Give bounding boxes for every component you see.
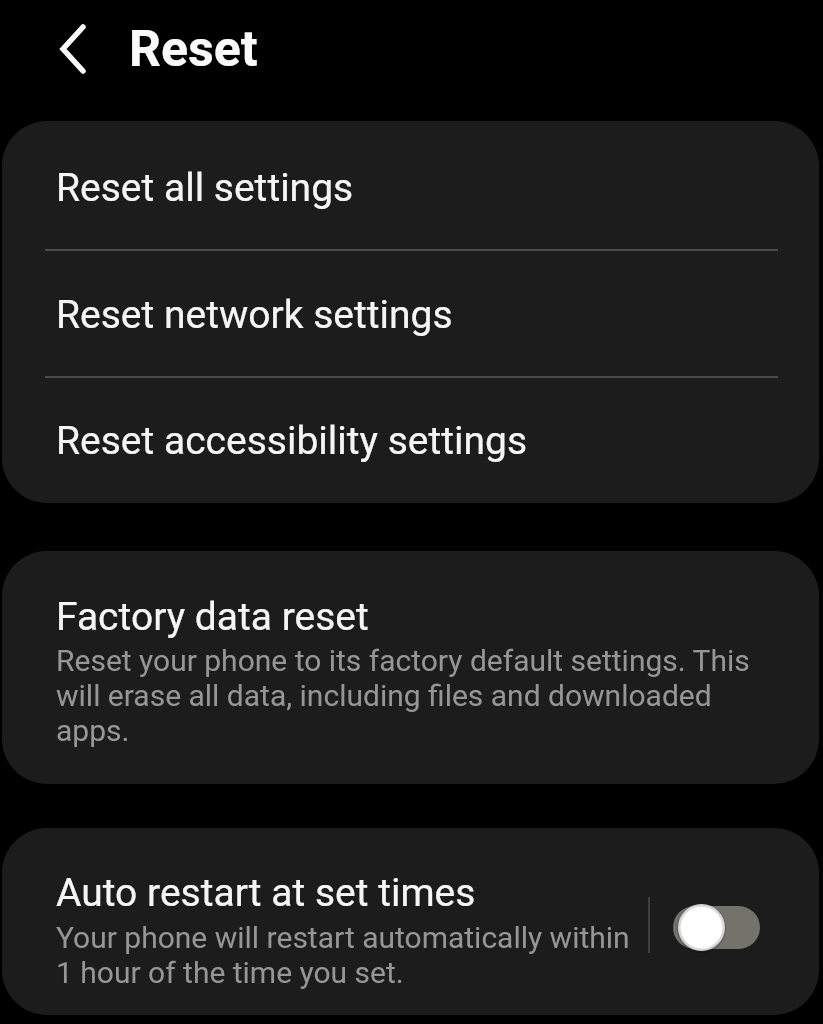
staticText: Reset all settings: [56, 165, 354, 211]
staticText: Reset accessibility settings: [56, 418, 528, 464]
button[interactable]: Factory data reset: [2, 551, 819, 784]
staticText: Reset: [129, 20, 258, 78]
button[interactable]: Reset accessibility settings: [2, 378, 819, 503]
staticText: Your phone will restart automatically wi…: [56, 920, 630, 990]
button[interactable]: Reset network settings: [2, 251, 819, 378]
staticText: Auto restart at set times: [56, 870, 476, 916]
button[interactable]: Reset all settings: [2, 124, 819, 251]
button[interactable]: [48, 14, 98, 84]
button[interactable]: [669, 900, 765, 954]
button[interactable]: Auto restart at set times: [2, 828, 819, 1015]
staticText: Reset your phone to its factory default …: [56, 643, 750, 748]
staticText: Reset network settings: [56, 292, 453, 338]
staticText: Factory data reset: [56, 594, 369, 640]
